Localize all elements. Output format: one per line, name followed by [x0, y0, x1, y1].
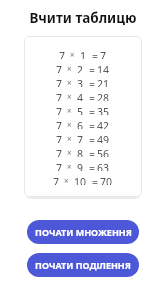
button[interactable]: ПОЧАТИ МНОЖЕННЯ [27, 220, 139, 244]
staticText: = [89, 161, 96, 171]
staticText: = [89, 105, 96, 115]
staticText: 49 [97, 133, 110, 143]
staticText: 42 [97, 119, 110, 129]
staticText: 2 [77, 63, 84, 73]
staticText: 7 [59, 49, 66, 59]
staticText: 4 [77, 91, 84, 101]
button[interactable]: ПОЧАТИ ПОДІЛЕННЯ [27, 253, 139, 277]
staticText: = [89, 147, 96, 157]
staticText: = [92, 49, 99, 59]
staticText: = [89, 63, 96, 73]
staticText: 6 [77, 119, 84, 129]
staticText: 7 [53, 175, 60, 185]
staticText: × [67, 161, 72, 171]
staticText: 7 [56, 161, 63, 171]
staticText: 3 [77, 77, 84, 87]
staticText: × [70, 49, 75, 59]
staticText: 7 [56, 91, 63, 101]
staticText: × [67, 77, 72, 87]
staticText: = [92, 175, 99, 185]
staticText: 21 [97, 77, 110, 87]
staticText: = [89, 77, 96, 87]
staticText: × [67, 119, 72, 129]
staticText: 7 [56, 119, 63, 129]
staticText: × [67, 91, 72, 101]
staticText: Вчити таблицю [0, 9, 166, 27]
staticText: = [89, 119, 96, 129]
staticText: 14 [97, 63, 110, 73]
staticText: 7 [56, 105, 63, 115]
staticText: 35 [97, 105, 110, 115]
staticText: 1 [80, 49, 87, 59]
staticText: 56 [97, 147, 110, 157]
staticText: × [67, 105, 72, 115]
staticText: 7 [77, 133, 84, 143]
staticText: 28 [97, 91, 110, 101]
staticText: 7 [56, 147, 63, 157]
staticText: ПОЧАТИ МНОЖЕННЯ [35, 226, 132, 238]
staticText: 7 [56, 77, 63, 87]
staticText: ПОЧАТИ ПОДІЛЕННЯ [35, 259, 131, 271]
staticText: 5 [77, 105, 84, 115]
staticText: 7 [100, 49, 107, 59]
staticText: 7 [56, 133, 63, 143]
staticText: = [89, 133, 96, 143]
staticText: 70 [100, 175, 113, 185]
staticText: 9 [77, 161, 84, 171]
staticText: 10 [74, 175, 87, 185]
staticText: × [67, 63, 72, 73]
staticText: × [67, 147, 72, 157]
staticText: × [67, 133, 72, 143]
staticText: × [64, 175, 69, 185]
staticText: = [89, 91, 96, 101]
staticText: 8 [77, 147, 84, 157]
staticText: 63 [97, 161, 110, 171]
staticText: 7 [56, 63, 63, 73]
